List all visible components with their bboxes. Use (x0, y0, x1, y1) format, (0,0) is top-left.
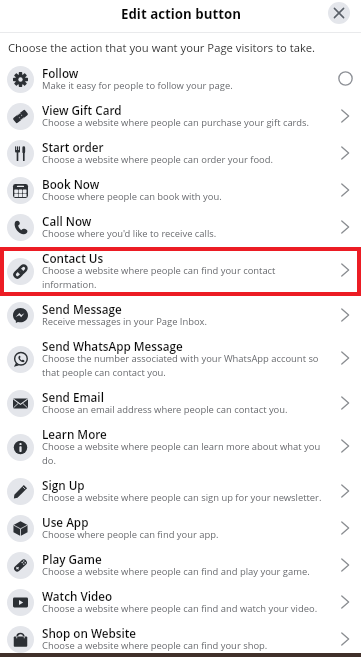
staticText: Choose the action that you want your Pag… (8, 40, 316, 55)
staticText: Choose where people can book with you. (42, 190, 222, 203)
button[interactable]: Use App (0, 514, 361, 543)
button[interactable]: Watch Video (0, 588, 361, 617)
staticText: Play Game (42, 551, 102, 567)
button[interactable]: Follow (0, 65, 361, 94)
staticText: Edit action button (121, 5, 241, 23)
staticText: Shop on Website (42, 625, 137, 641)
staticText: Choose a website where people can find y… (42, 264, 322, 290)
staticText: Learn More (42, 426, 107, 442)
staticText: Choose a website where people can find a… (42, 602, 318, 615)
staticText: Make it easy for people to follow your p… (42, 79, 233, 92)
staticText: Send Email (42, 389, 104, 405)
staticText: Send WhatsApp Message (42, 338, 183, 354)
staticText: Choose where you'd like to receive calls… (42, 227, 217, 240)
staticText: Choose a website where people can purcha… (42, 116, 309, 129)
button[interactable]: Send Message (0, 301, 361, 330)
button[interactable]: Send Email (0, 389, 361, 418)
staticText: Start order (42, 139, 104, 155)
button[interactable]: Send WhatsApp Message (0, 338, 361, 380)
button[interactable]: Contact Us (0, 250, 361, 292)
staticText: Choose where people can find your app. (42, 528, 219, 541)
staticText: Choose a website where people can find a… (42, 565, 310, 578)
button[interactable]: Book Now (0, 176, 361, 205)
staticText: Send Message (42, 301, 122, 317)
staticText: Call Now (42, 213, 92, 229)
staticText: Watch Video (42, 588, 113, 604)
button[interactable]: Play Game (0, 551, 361, 580)
staticText: Choose the number associated with your W… (42, 352, 322, 378)
staticText: Choose a website where people can learn … (42, 440, 322, 466)
staticText: Follow (42, 65, 79, 81)
button[interactable]: Sign Up (0, 477, 361, 506)
button[interactable]: View Gift Card (0, 102, 361, 131)
staticText: Book Now (42, 176, 100, 192)
staticText: Choose a website where people can order … (42, 153, 274, 166)
button[interactable]: Shop on Website (0, 625, 361, 654)
button[interactable]: Start order (0, 139, 361, 168)
staticText: Sign Up (42, 477, 85, 493)
staticText: Choose an email address where people can… (42, 403, 288, 416)
staticText: Use App (42, 514, 89, 530)
staticText: View Gift Card (42, 102, 122, 118)
staticText: Choose a website where people can find y… (42, 639, 268, 652)
button[interactable]: Close (328, 2, 350, 24)
staticText: Contact Us (42, 250, 104, 266)
button[interactable]: Learn More (0, 426, 361, 468)
staticText: Receive messages in your Page Inbox. (42, 315, 207, 328)
staticText: Choose a website where people can sign u… (42, 491, 322, 504)
button[interactable]: Call Now (0, 213, 361, 242)
